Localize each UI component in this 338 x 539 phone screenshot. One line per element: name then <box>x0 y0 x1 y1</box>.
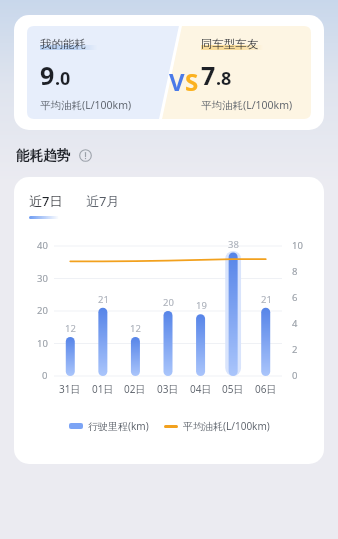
staticText: 12 <box>130 322 141 335</box>
staticText: 30 <box>37 272 48 285</box>
staticText: 03日 <box>157 382 179 396</box>
staticText: 12 <box>65 322 76 335</box>
staticText: .0 <box>55 66 71 91</box>
staticText: 10 <box>37 337 48 350</box>
staticText: 我的能耗 <box>40 37 86 51</box>
staticText: 2 <box>292 343 298 356</box>
staticText: 21 <box>261 293 272 306</box>
button[interactable]: 近7日 <box>29 192 63 219</box>
staticText: 近7月 <box>86 192 120 210</box>
staticText: 20 <box>37 304 48 317</box>
staticText: 01日 <box>92 382 114 396</box>
staticText: 平均油耗(L/100km) <box>40 98 132 112</box>
button[interactable]: 近7月 <box>86 192 120 219</box>
staticText: V <box>169 65 185 98</box>
staticText: .8 <box>216 66 232 91</box>
staticText: 19 <box>196 299 207 312</box>
staticText: 7 <box>201 58 216 92</box>
staticText: 40 <box>37 239 48 252</box>
staticText: 4 <box>292 317 298 330</box>
button[interactable]: 我的能耗 <box>14 15 324 130</box>
staticText: 同车型车友 <box>201 37 259 51</box>
button[interactable]: 说明 <box>79 149 92 162</box>
staticText: 平均油耗(L/100km) <box>201 98 293 112</box>
staticText: 21 <box>98 293 109 306</box>
staticText: 20 <box>163 296 174 309</box>
staticText: 31日 <box>59 382 81 396</box>
staticText: 能耗趋势 <box>16 147 70 164</box>
staticText: 8 <box>292 265 298 278</box>
staticText: S <box>185 65 199 98</box>
staticText: 02日 <box>124 382 146 396</box>
staticText: 行驶里程(km) <box>88 419 149 433</box>
staticText: 04日 <box>190 382 212 396</box>
staticText: 9 <box>40 58 55 92</box>
staticText: 近7日 <box>29 192 63 210</box>
staticText: 05日 <box>222 382 244 396</box>
staticText: 6 <box>292 291 298 304</box>
staticText: 06日 <box>255 382 277 396</box>
staticText: 平均油耗(L/100km) <box>183 419 270 433</box>
staticText: 10 <box>292 239 303 252</box>
staticText: 38 <box>228 238 239 251</box>
staticText: 0 <box>42 369 48 382</box>
staticText: 0 <box>292 369 298 382</box>
